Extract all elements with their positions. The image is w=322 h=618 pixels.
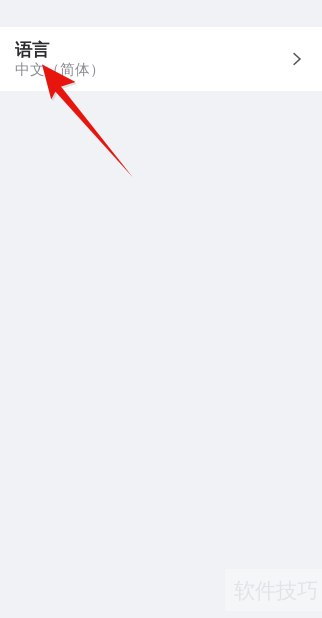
staticText: 软件技巧 — [234, 578, 318, 604]
staticText: 中文（简体） — [15, 61, 105, 79]
button[interactable]: 语言 — [0, 27, 322, 91]
staticText: 语言 — [15, 39, 49, 61]
